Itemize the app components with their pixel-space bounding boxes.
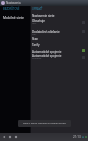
staticText: Spojenie bbox=[32, 57, 42, 60]
button[interactable]: Back bbox=[1, 134, 7, 140]
button[interactable]: Tarify bbox=[30, 42, 88, 48]
staticText: Obsahuje bbox=[32, 19, 45, 23]
staticText: Text bbox=[32, 22, 37, 25]
button[interactable]: Home bbox=[7, 134, 13, 140]
staticText: Automatické spojenie bbox=[32, 54, 62, 58]
button[interactable]: Mobilné siete bbox=[0, 13, 30, 20]
button[interactable]: App icon bbox=[1, 1, 5, 5]
button[interactable]: Dodatočné zdieľanie bbox=[30, 27, 88, 36]
staticText: Sieť bbox=[32, 33, 36, 36]
button[interactable]: Obsahuje bbox=[30, 18, 88, 26]
staticText: Nastavenie siete bbox=[32, 14, 55, 18]
staticText: Stav bbox=[32, 37, 38, 41]
button[interactable]: Recents bbox=[13, 134, 19, 140]
staticText: BEZDRÔTOVÉ bbox=[3, 7, 20, 11]
staticText: UPRAVIŤ bbox=[32, 7, 43, 11]
button[interactable]: Automatické spojenie bbox=[30, 48, 88, 53]
button[interactable]: Stav bbox=[30, 36, 88, 42]
staticText: Mobilné siete bbox=[3, 15, 24, 19]
staticText: Nastavenia bbox=[6, 1, 21, 5]
staticText: Automatické spojenie bbox=[32, 50, 62, 54]
staticText: Siete v tomto zozname sa nedajú použiť bbox=[23, 122, 66, 125]
staticText: Dodatočné zdieľanie bbox=[32, 30, 60, 34]
button[interactable]: Nastavenie siete bbox=[30, 12, 88, 18]
button[interactable]: Automatické spojenie bbox=[30, 53, 88, 61]
staticText: 21:13 bbox=[73, 135, 81, 139]
staticText: Tarify bbox=[32, 43, 40, 47]
